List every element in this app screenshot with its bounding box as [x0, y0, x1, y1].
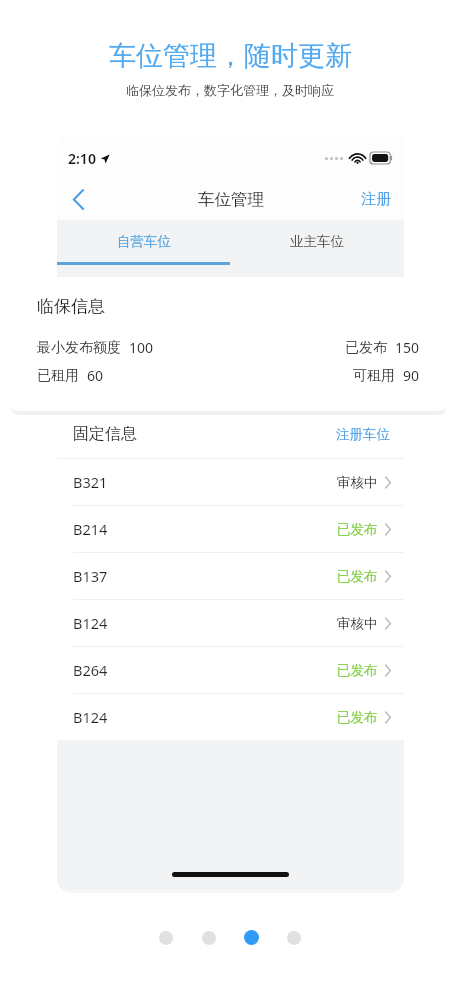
staticText: 业主车位 [290, 233, 344, 250]
button[interactable]: B264 [57, 647, 404, 693]
staticText: 已发布 [337, 568, 378, 585]
button[interactable]: B321 [57, 459, 404, 505]
staticText: 60 [87, 366, 104, 385]
staticText: 150 [395, 338, 420, 357]
button[interactable]: Page 3 [244, 930, 259, 945]
staticText: 临保信息 [37, 296, 105, 317]
button[interactable]: B214 [57, 506, 404, 552]
button[interactable]: B124 [57, 600, 404, 646]
staticText: 2:10 [68, 149, 96, 168]
button[interactable]: Page 2 [202, 931, 216, 945]
staticText: B124 [73, 613, 108, 633]
button[interactable]: B124 [57, 694, 404, 740]
staticText: 已租用 [37, 367, 79, 385]
staticText: 已发布 [337, 709, 378, 726]
staticText: 已发布 [345, 339, 387, 357]
staticText: 固定信息 [73, 424, 137, 444]
staticText: 90 [403, 366, 420, 385]
button[interactable]: B137 [57, 553, 404, 599]
button[interactable]: Page 1 [159, 931, 173, 945]
button[interactable]: 自营车位 [57, 220, 230, 262]
staticText: B137 [73, 566, 108, 586]
staticText: 车位管理 [198, 189, 264, 210]
staticText: 已发布 [337, 662, 378, 679]
button[interactable]: 注册 [348, 182, 404, 217]
staticText: 临保位发布，数字化管理，及时响应 [126, 82, 334, 98]
staticText: B214 [73, 519, 108, 539]
staticText: 已发布 [337, 521, 378, 538]
button[interactable]: 注册车位 [322, 418, 404, 451]
staticText: 注册车位 [336, 426, 390, 443]
button[interactable]: Page 4 [287, 931, 301, 945]
staticText: B264 [73, 660, 108, 680]
staticText: 100 [129, 338, 154, 357]
staticText: 最小发布额度 [37, 339, 121, 357]
staticText: 审核中 [337, 474, 378, 491]
staticText: 可租用 [353, 367, 395, 385]
staticText: 审核中 [337, 615, 378, 632]
button[interactable]: 业主车位 [230, 220, 404, 262]
staticText: B321 [73, 472, 108, 492]
button[interactable]: 临保信息 [11, 277, 446, 411]
staticText: 车位管理，随时更新 [109, 39, 352, 73]
button[interactable]: Back [57, 179, 99, 220]
staticText: 注册 [361, 190, 391, 209]
staticText: B124 [73, 707, 108, 727]
staticText: 自营车位 [117, 233, 171, 250]
